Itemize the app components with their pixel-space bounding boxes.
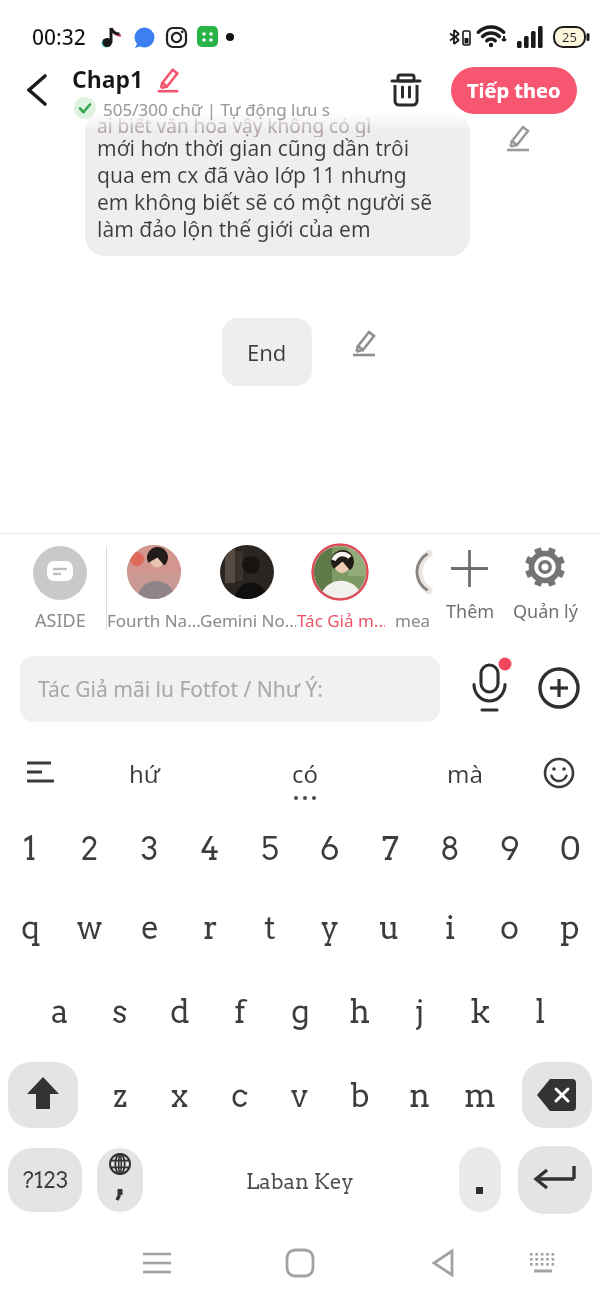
button[interactable]: 7	[360, 820, 420, 876]
button[interactable]	[314, 546, 366, 598]
button[interactable]: 1	[0, 820, 60, 876]
button[interactable]: ?123	[8, 1148, 82, 1212]
button[interactable]: k	[450, 983, 510, 1039]
button[interactable]	[389, 72, 423, 108]
button[interactable]	[349, 328, 379, 358]
button[interactable]	[459, 1147, 501, 1212]
staticText: Chap1	[72, 63, 144, 94]
button[interactable]: d	[150, 983, 210, 1039]
button[interactable]: Laban Key	[220, 1160, 380, 1202]
staticText: 5	[261, 829, 279, 868]
staticText: n	[409, 1076, 431, 1115]
button[interactable]	[33, 546, 87, 600]
staticText: c	[231, 1076, 249, 1115]
button[interactable]: 5	[240, 820, 300, 876]
staticText: Tác Giả mãi lu Fotfot / Như Ý:	[38, 675, 323, 704]
button[interactable]: j	[390, 983, 450, 1039]
button[interactable]	[538, 667, 580, 709]
staticText: i	[445, 908, 456, 947]
button[interactable]	[154, 66, 182, 94]
button[interactable]	[543, 757, 575, 789]
button[interactable]	[469, 662, 515, 718]
button[interactable]: e	[120, 899, 180, 955]
button[interactable]: s	[90, 983, 150, 1039]
staticText: em không biết sẽ có một người sẽ	[97, 188, 433, 215]
button[interactable]: l	[510, 983, 570, 1039]
staticText: x	[171, 1076, 189, 1115]
staticText: a	[51, 992, 69, 1031]
button[interactable]	[97, 1148, 143, 1212]
button[interactable]: 2	[60, 820, 120, 876]
button[interactable]	[24, 75, 52, 105]
staticText: e	[141, 908, 160, 947]
button[interactable]: w	[60, 899, 120, 955]
button[interactable]	[220, 545, 274, 599]
staticText: 00:32	[32, 23, 86, 52]
button[interactable]: mà	[425, 752, 505, 794]
button[interactable]	[25, 758, 59, 788]
button[interactable]: g	[270, 983, 330, 1039]
button[interactable]	[522, 1062, 592, 1128]
staticText: s	[112, 992, 128, 1031]
staticText: hứ	[129, 757, 161, 790]
button[interactable]	[8, 1062, 78, 1128]
button[interactable]: 4	[180, 820, 240, 876]
button[interactable]	[526, 1250, 560, 1278]
button[interactable]: f	[210, 983, 270, 1039]
staticText: Laban Key	[246, 1169, 354, 1194]
button[interactable]	[503, 123, 533, 153]
button[interactable]: 6	[300, 820, 360, 876]
staticText: mới hơn thời gian cũng dần trôi	[97, 134, 410, 161]
button[interactable]: n	[390, 1067, 450, 1123]
staticText: Quản lý	[513, 599, 578, 624]
button[interactable]	[428, 1248, 458, 1278]
staticText: o	[500, 908, 520, 947]
button[interactable]	[285, 1248, 315, 1278]
button[interactable]: q	[0, 899, 60, 955]
button[interactable]: i	[420, 899, 480, 955]
staticText: w	[77, 908, 103, 947]
button[interactable]: p	[540, 899, 600, 955]
button[interactable]: o	[480, 899, 540, 955]
button[interactable]: End	[222, 318, 312, 386]
button[interactable]: r	[180, 899, 240, 955]
button[interactable]: t	[240, 899, 300, 955]
button[interactable]: y	[300, 899, 360, 955]
button[interactable]: x	[150, 1067, 210, 1123]
button[interactable]: b	[330, 1067, 390, 1123]
button[interactable]: có	[265, 752, 345, 794]
staticText: ?123	[22, 1166, 69, 1194]
button[interactable]	[518, 1146, 592, 1214]
staticText: 2	[81, 829, 99, 868]
button[interactable]: 8	[420, 820, 480, 876]
button[interactable]: 9	[480, 820, 540, 876]
button[interactable]: u	[360, 899, 420, 955]
button[interactable]: z	[90, 1067, 150, 1123]
staticText: f	[234, 992, 246, 1031]
button[interactable]	[522, 544, 568, 590]
button[interactable]: h	[330, 983, 390, 1039]
staticText: 9	[500, 829, 520, 868]
staticText: 4	[200, 829, 220, 868]
button[interactable]: Tác Giả mãi lu Fotfot / Như Ý:	[20, 656, 440, 722]
staticText: 505/300 chữ | Tự động lưu s	[103, 98, 330, 121]
staticText: r	[203, 908, 218, 947]
staticText: q	[21, 908, 40, 947]
button[interactable]: a	[30, 983, 90, 1039]
staticText: 1	[23, 829, 37, 868]
button[interactable]: v	[270, 1067, 330, 1123]
button[interactable]	[451, 550, 488, 587]
staticText: t	[264, 908, 276, 947]
staticText: 0	[560, 829, 581, 868]
staticText: m	[464, 1076, 497, 1115]
button[interactable]: Tiếp theo	[451, 67, 577, 114]
button[interactable]: 3	[120, 820, 180, 876]
staticText: ai biết văn hóa vậy không có gì	[97, 113, 372, 137]
staticText: Tiếp theo	[467, 77, 561, 104]
button[interactable]: hứ	[105, 752, 185, 794]
button[interactable]: m	[450, 1067, 510, 1123]
button[interactable]: c	[210, 1067, 270, 1123]
button[interactable]: 0	[540, 820, 600, 876]
button[interactable]	[127, 545, 181, 599]
button[interactable]	[140, 1250, 174, 1278]
